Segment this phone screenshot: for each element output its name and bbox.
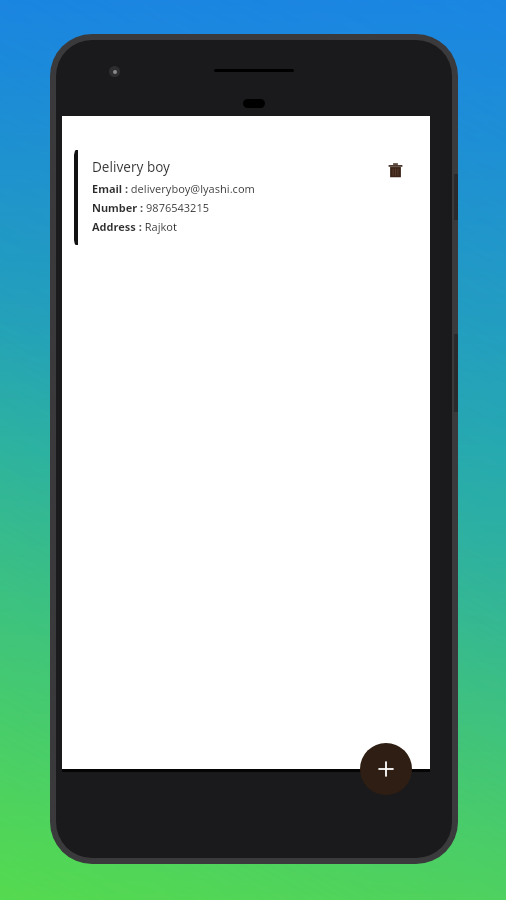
button[interactable]: Add: [360, 743, 412, 795]
button[interactable]: Delete: [380, 155, 410, 185]
staticText: Email : deliveryboy@lyashi.com: [92, 181, 255, 196]
button[interactable]: Delivery boy: [74, 145, 422, 250]
staticText: Delivery boy: [92, 158, 170, 176]
staticText: Address : Rajkot: [92, 219, 177, 234]
staticText: Number : 9876543215: [92, 200, 209, 215]
